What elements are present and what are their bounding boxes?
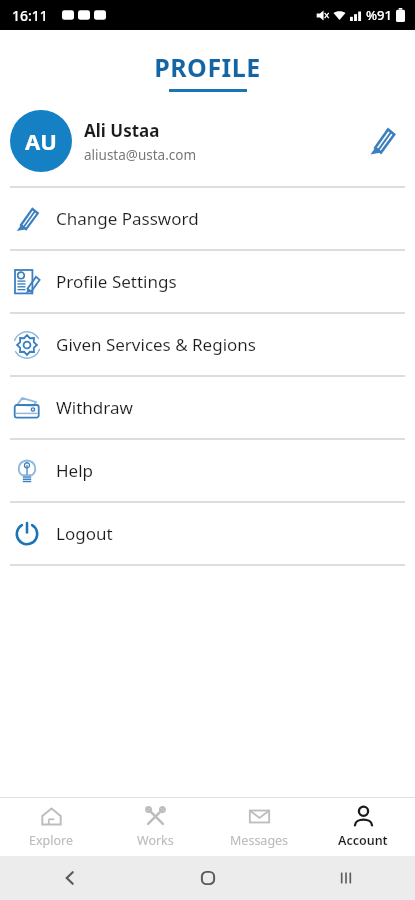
button[interactable]: Account	[311, 798, 415, 856]
button[interactable]: Withdraw	[0, 377, 415, 438]
staticText: Works	[137, 832, 174, 849]
button[interactable]: Logout	[0, 503, 415, 564]
button[interactable]: Recents	[337, 869, 355, 887]
button[interactable]: Change Password	[0, 188, 415, 249]
button[interactable]: Given Services & Regions	[0, 314, 415, 375]
staticText: Ali Ustaa	[84, 119, 160, 142]
button[interactable]: Back	[61, 869, 79, 887]
button[interactable]: Edit profile	[359, 118, 405, 164]
staticText: AU	[25, 126, 57, 156]
staticText: %91	[366, 6, 392, 24]
staticText: Explore	[29, 832, 74, 849]
staticText: Withdraw	[56, 396, 133, 419]
button[interactable]: Works	[103, 798, 207, 856]
staticText: Account	[338, 832, 388, 849]
button[interactable]: AU	[0, 108, 415, 174]
button[interactable]: Messages	[207, 798, 311, 856]
staticText: PROFILE	[154, 50, 261, 84]
staticText: Messages	[230, 832, 289, 849]
button[interactable]: Profile Settings	[0, 251, 415, 312]
staticText: Given Services & Regions	[56, 333, 256, 356]
button[interactable]: Home	[199, 869, 217, 887]
staticText: 16:11	[12, 6, 48, 25]
button[interactable]: Explore	[0, 798, 103, 856]
staticText: aliusta@usta.com	[84, 146, 197, 164]
button[interactable]: Help	[0, 440, 415, 501]
staticText: Logout	[56, 522, 113, 545]
staticText: Profile Settings	[56, 270, 177, 293]
staticText: Change Password	[56, 207, 199, 230]
staticText: Help	[56, 459, 94, 482]
